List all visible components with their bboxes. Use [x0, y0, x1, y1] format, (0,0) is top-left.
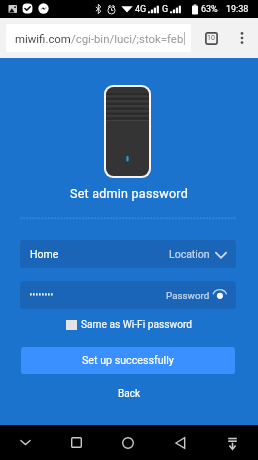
- button[interactable]: Hide keyboard: [0, 425, 51, 460]
- button[interactable]: Dismiss keyboard: [206, 425, 258, 460]
- staticText: Set up successfully: [82, 354, 174, 367]
- button[interactable]: Recent apps: [51, 425, 102, 460]
- button[interactable]: Home: [20, 240, 236, 268]
- staticText: 4G: [135, 4, 147, 15]
- staticText: /cgi-bin/luci/;stok=feb: [71, 32, 184, 45]
- staticText: 19:38: [226, 4, 249, 15]
- staticText: G: [162, 4, 169, 15]
- button[interactable]: miwifi.com: [6, 24, 191, 52]
- button[interactable]: Tabs: [199, 26, 223, 50]
- staticText: Location: [169, 248, 210, 260]
- button[interactable]: More options: [230, 26, 254, 50]
- staticText: 10: [207, 34, 215, 42]
- button[interactable]: Home: [102, 425, 154, 460]
- staticText: Password: [166, 290, 210, 301]
- staticText: Set admin password: [70, 186, 189, 201]
- staticText: miwifi.com: [15, 32, 71, 45]
- button[interactable]: Back: [154, 425, 206, 460]
- staticText: Same as Wi-Fi password: [81, 319, 193, 331]
- button[interactable]: Set up successfully: [21, 347, 235, 374]
- button[interactable]: Password: [20, 281, 236, 309]
- staticText: Home: [30, 248, 59, 260]
- button[interactable]: Same as Wi-Fi password: [62, 315, 197, 335]
- button[interactable]: Back: [112, 386, 146, 402]
- staticText: 63%: [201, 4, 218, 15]
